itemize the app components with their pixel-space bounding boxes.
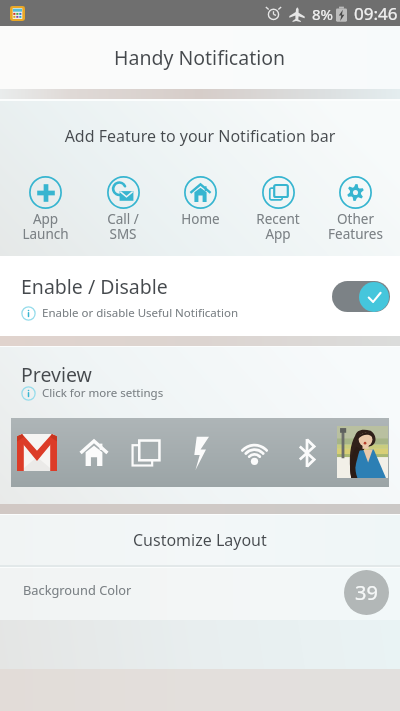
button[interactable]: Background Color (0, 567, 400, 620)
staticText: Customize Layout (133, 529, 267, 551)
staticText: 09:46 (354, 2, 398, 25)
staticText: Other Features (328, 210, 383, 243)
staticText: Preview (21, 361, 92, 388)
staticText: Handy Notification (114, 44, 286, 71)
staticText: Background Color (23, 581, 132, 598)
button[interactable]: Recent App (240, 176, 316, 243)
staticText: Recent App (256, 210, 300, 243)
button[interactable]: Enable or disable notification (332, 281, 390, 312)
staticText: Add Feature to your Notification bar (0, 125, 400, 147)
staticText: 39 (355, 579, 378, 606)
button[interactable]: Call / SMS (85, 176, 161, 243)
staticText: Enable / Disable (21, 273, 168, 300)
button[interactable]: Home (162, 176, 238, 228)
staticText: 8% (312, 4, 334, 24)
staticText: Home (181, 210, 220, 228)
staticText: Call / SMS (107, 210, 139, 243)
staticText: Click for more settings (42, 385, 164, 401)
staticText: App Launch (22, 210, 69, 243)
button[interactable]: Other Features (317, 176, 393, 243)
button[interactable]: App Launch (7, 176, 83, 243)
staticText: Enable or disable Useful Notification (42, 305, 238, 321)
button[interactable] (11, 418, 389, 487)
